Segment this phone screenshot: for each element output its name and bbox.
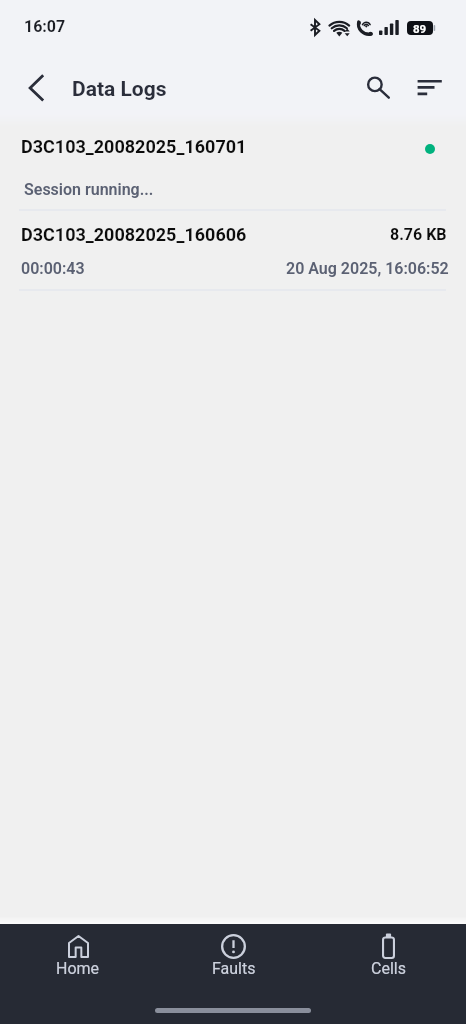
- staticText: 16:07: [24, 17, 66, 36]
- staticText: Faults: [212, 959, 256, 978]
- staticText: Cells: [371, 959, 406, 978]
- staticText: 8.76 KB: [390, 225, 447, 244]
- staticText: 20 Aug 2025, 16:06:52: [286, 259, 449, 278]
- button[interactable]: Back: [13, 64, 59, 110]
- staticText: Data Logs: [72, 77, 167, 102]
- staticText: Session running...: [24, 180, 154, 199]
- button[interactable]: Search: [352, 65, 398, 111]
- button[interactable]: Faults: [156, 924, 311, 1024]
- staticText: 89: [413, 22, 427, 35]
- button[interactable]: Sort: [407, 65, 453, 111]
- staticText: 00:00:43: [21, 259, 85, 278]
- staticText: D3C103_20082025_160701: [21, 136, 247, 157]
- staticText: Home: [56, 959, 100, 978]
- button[interactable]: Cells: [311, 924, 466, 1024]
- button[interactable]: D3C103_20082025_160701: [0, 126, 466, 210]
- staticText: D3C103_20082025_160606: [21, 224, 247, 245]
- button[interactable]: D3C103_20082025_160606: [0, 210, 466, 290]
- button[interactable]: Home: [0, 924, 156, 1024]
